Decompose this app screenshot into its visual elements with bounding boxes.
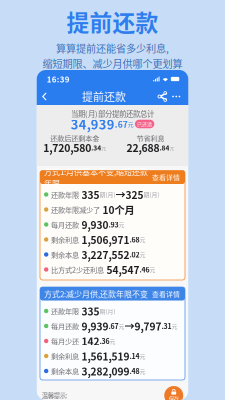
staticText: .46 [140, 264, 150, 274]
staticText: 期(月) [100, 190, 116, 199]
staticText: .14 [130, 351, 140, 361]
staticText: 剩余利息 [51, 234, 79, 245]
button[interactable]: 查看详情 [148, 287, 185, 300]
staticText: .34 [91, 143, 101, 152]
staticText: 142 [82, 334, 100, 348]
staticText: 10个月 [103, 202, 135, 217]
staticText: 每月少还 [51, 336, 79, 346]
staticText: 方式2:减少月供,还款年限不变 [44, 288, 148, 300]
button[interactable]: 返回 [37, 88, 53, 104]
staticText: 温馨提示: [42, 391, 68, 400]
staticText: 9,930 [82, 217, 109, 232]
staticText: .84 [159, 143, 169, 152]
staticText: .93 [109, 219, 119, 229]
staticText: 3,282,099 [82, 364, 130, 378]
button[interactable]: 更多 [169, 89, 188, 103]
staticText: 期(月) [100, 307, 116, 315]
staticText: → [125, 319, 135, 333]
staticText: 比方式2少还利息 [51, 264, 104, 275]
staticText: 剩余本息 [51, 249, 79, 260]
staticText: 元 [119, 322, 125, 330]
staticText: 22,688 [126, 140, 159, 155]
button[interactable]: 查看详情 [148, 170, 185, 184]
staticText: 元 [140, 235, 146, 244]
button[interactable]: 分享 [155, 89, 169, 103]
staticText: 当期(月)部分提前还款总计 [71, 108, 154, 119]
staticText: 9,797 [135, 319, 162, 333]
staticText: .48 [130, 366, 140, 376]
staticText: .31 [162, 321, 172, 331]
staticText: → [116, 187, 126, 202]
staticText: 还款年限 [51, 189, 79, 200]
staticText: 还款年限减少了 [51, 204, 100, 215]
staticText: 算算提前还能省多少利息, [56, 41, 169, 55]
staticText: 已还清 [137, 120, 152, 128]
staticText: 元 [119, 220, 125, 229]
staticText: .67 [109, 321, 119, 331]
staticText: 54,547 [107, 262, 140, 277]
staticText: 提前还款 [66, 5, 158, 38]
staticText: 节省利息 [136, 133, 164, 143]
staticText: 元 [140, 352, 146, 360]
staticText: 1,720,580 [43, 140, 91, 155]
staticText: 元 [110, 337, 116, 345]
staticText: .02 [130, 249, 140, 259]
staticText: 每月还款 [51, 219, 79, 230]
staticText: 1,561,519 [82, 349, 130, 363]
staticText: 16:39 [47, 73, 70, 85]
staticText: 1,506,971 [82, 232, 130, 247]
staticText: 9,939 [82, 319, 109, 333]
staticText: 3,227,552 [82, 247, 130, 262]
staticText: 元 [128, 120, 134, 128]
staticText: 元 [172, 322, 178, 330]
staticText: 期(月) [144, 190, 160, 199]
staticText: 提前还款 [82, 89, 126, 104]
staticText: 335 [82, 187, 100, 202]
staticText: 325 [126, 187, 144, 202]
staticText: 34,939 [71, 115, 115, 133]
staticText: 方式1:月供基本不变,缩短还款年限 [44, 166, 148, 189]
staticText: .68 [130, 234, 140, 244]
staticText: 查看详情 [152, 172, 180, 182]
staticText: .67 [115, 118, 128, 130]
staticText: 剩余本息 [51, 366, 79, 376]
staticText: 元 [169, 144, 174, 151]
staticText: 缩短期限、减少月供哪个更划算 [42, 56, 182, 71]
staticText: 保存 [169, 395, 179, 400]
staticText: .36 [100, 336, 110, 346]
staticText: 元 [140, 367, 146, 375]
staticText: 元 [101, 144, 106, 151]
staticText: 还款后还剩本金 [50, 133, 99, 143]
staticText: 元 [150, 265, 156, 274]
staticText: 元 [140, 250, 146, 259]
staticText: 每月还款 [51, 321, 79, 331]
staticText: 335 [82, 304, 100, 318]
button[interactable]: 保存 [164, 386, 183, 400]
staticText: 查看详情 [152, 289, 180, 299]
staticText: 剩余利息 [51, 351, 79, 361]
staticText: 还款年限 [51, 306, 79, 316]
